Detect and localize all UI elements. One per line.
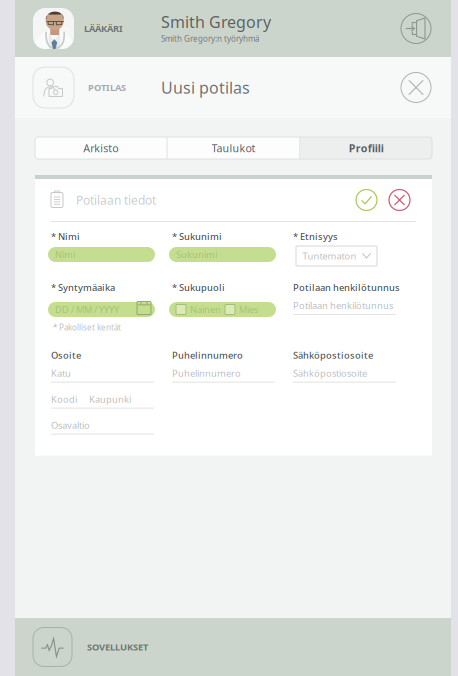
staticText: Arkisto bbox=[83, 141, 118, 155]
button[interactable]: Taulukot bbox=[168, 137, 299, 159]
staticText: Potilaan henkilötunnus bbox=[293, 281, 400, 294]
staticText: DD / MM / YYYY bbox=[55, 303, 119, 316]
staticText: Mies bbox=[239, 303, 258, 316]
staticText: Smith Gregory bbox=[161, 11, 271, 32]
staticText: Sähköpostiosoite bbox=[293, 367, 367, 379]
staticText: * Pakolliset kentät bbox=[53, 322, 121, 333]
staticText: Sähköpostiosoite bbox=[293, 349, 373, 361]
staticText: Profiili bbox=[349, 141, 384, 155]
staticText: * Sukunimi bbox=[172, 230, 222, 243]
staticText: Koodi bbox=[51, 393, 77, 405]
button[interactable]: Arkisto bbox=[35, 137, 167, 159]
staticText: * Nimi bbox=[51, 230, 80, 243]
staticText: Osoite bbox=[51, 349, 81, 361]
staticText: Katu bbox=[51, 367, 71, 379]
button[interactable]: Close bbox=[401, 72, 431, 102]
staticText: * Sukupuoli bbox=[172, 281, 225, 294]
staticText: Uusi potilas bbox=[161, 77, 250, 98]
staticText: Puhelinnumero bbox=[172, 367, 241, 379]
staticText: Smith Gregory:n työryhmä bbox=[161, 33, 259, 44]
staticText: * Etnisyys bbox=[293, 230, 338, 243]
button[interactable]: Accept bbox=[356, 189, 377, 210]
button[interactable]: Cancel bbox=[389, 189, 410, 210]
staticText: Taulukot bbox=[211, 141, 255, 155]
staticText: Osavaltio bbox=[51, 419, 90, 431]
staticText: POTILAS bbox=[88, 81, 126, 94]
button[interactable]: Tuntematon bbox=[296, 246, 377, 266]
staticText: Nainen bbox=[190, 303, 221, 316]
button[interactable]: Profiili bbox=[300, 137, 432, 159]
staticText: Nimi bbox=[55, 248, 75, 261]
staticText: Potilaan henkilötunnus bbox=[293, 299, 393, 312]
button[interactable]: Applications bbox=[33, 627, 72, 666]
staticText: Puhelinnumero bbox=[172, 349, 243, 361]
button[interactable]: Log out bbox=[401, 13, 431, 43]
staticText: LÄÄKÄRI bbox=[84, 22, 123, 35]
staticText: Kaupunki bbox=[89, 393, 131, 405]
staticText: * Syntymäaika bbox=[51, 281, 115, 294]
staticText: Tuntematon bbox=[302, 250, 356, 262]
staticText: Sukunimi bbox=[176, 248, 217, 261]
staticText: SOVELLUKSET bbox=[87, 641, 148, 653]
staticText: Potilaan tiedot bbox=[76, 192, 156, 208]
